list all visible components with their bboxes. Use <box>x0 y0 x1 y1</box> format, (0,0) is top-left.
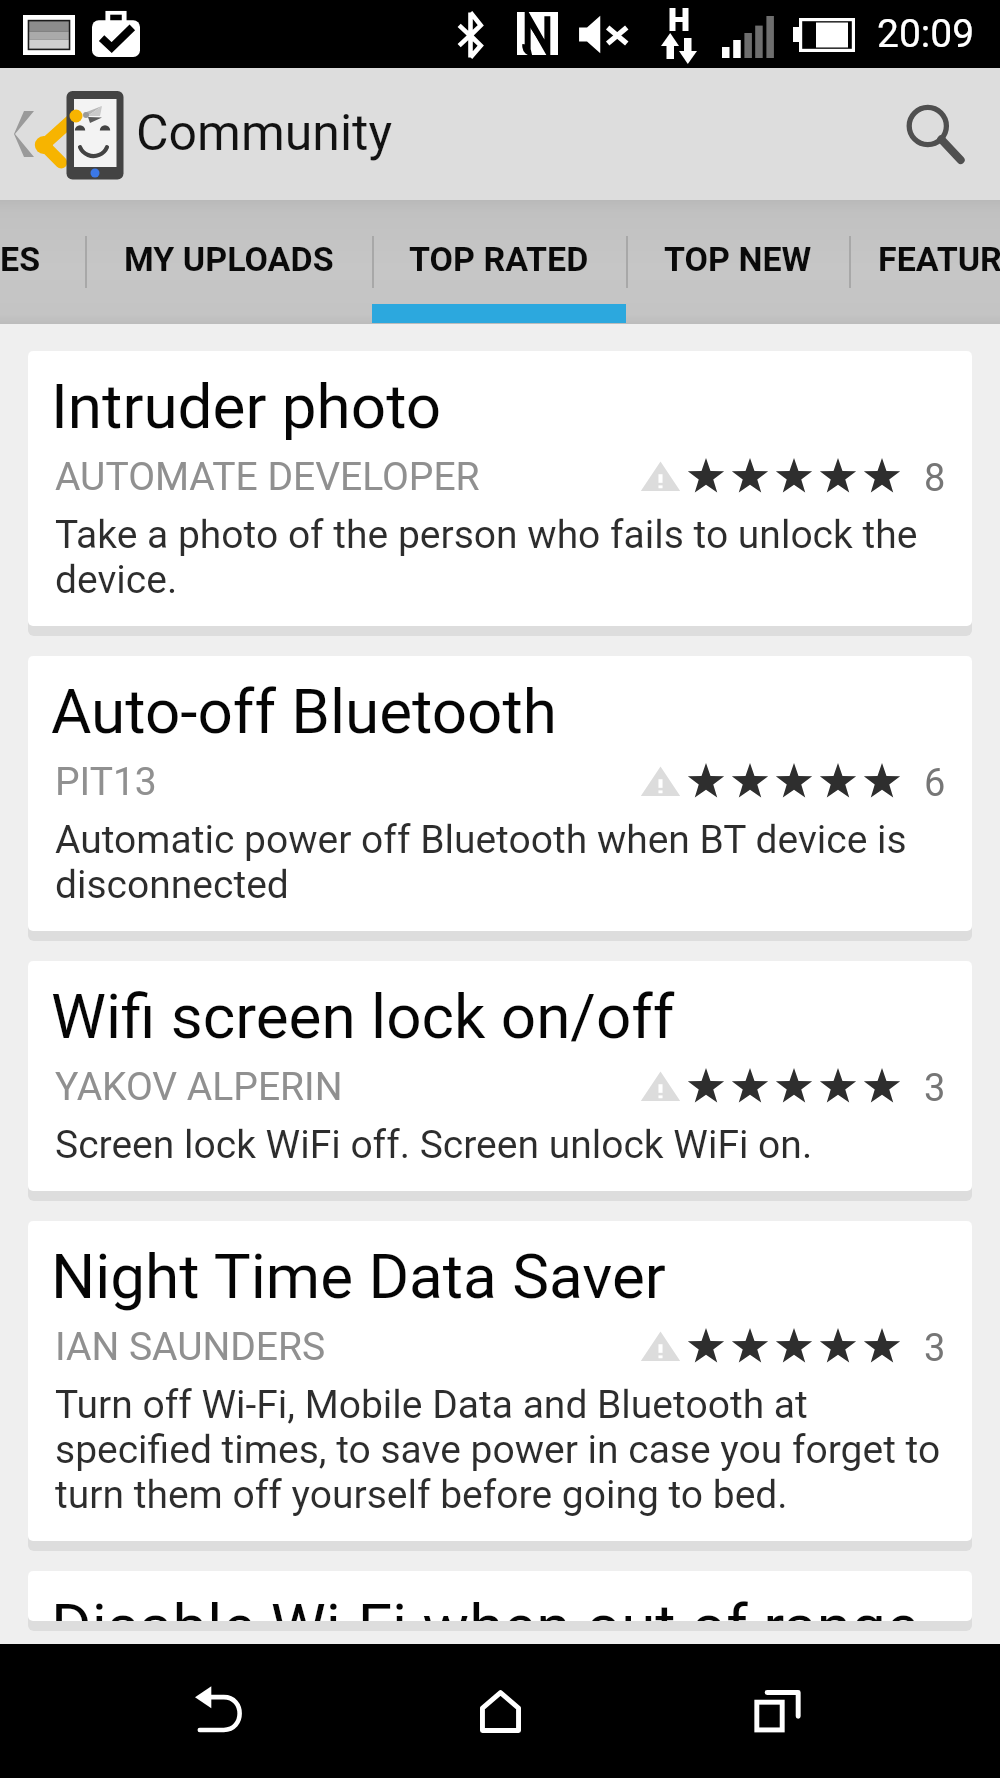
staticText: IAN SAUNDERS <box>55 1324 326 1370</box>
staticText: 20:09 <box>877 11 975 57</box>
button[interactable]: Navigate up <box>0 68 130 200</box>
staticText: turn them off yourself before going to b… <box>55 1472 788 1518</box>
staticText: Disable Wi-Fi when out of range <box>51 1590 919 1621</box>
staticText: Take a photo of the person who fails to … <box>55 512 918 558</box>
button[interactable]: TOP RATED <box>372 200 626 324</box>
staticText: MY UPLOADS <box>124 239 334 279</box>
button[interactable]: MOVIES <box>0 200 85 324</box>
staticText: Wifi screen lock on/off <box>51 980 675 1053</box>
staticText: specified times, to save power in case y… <box>55 1427 941 1473</box>
button[interactable]: Recent apps <box>694 1644 860 1778</box>
staticText: 8 <box>924 456 946 501</box>
button[interactable]: Disable Wi-Fi when out of range <box>28 1571 972 1621</box>
button[interactable]: MY UPLOADS <box>85 200 372 324</box>
staticText: TOP NEW <box>664 239 812 279</box>
button[interactable]: Wifi screen lock on/off <box>28 961 972 1191</box>
button[interactable]: Night Time Data Saver <box>28 1221 972 1541</box>
button[interactable]: Intruder photo <box>28 351 972 626</box>
staticText: MOVIES <box>0 239 41 279</box>
staticText: 3 <box>924 1326 946 1371</box>
staticText: Turn off Wi-Fi, Mobile Data and Bluetoot… <box>55 1382 808 1428</box>
button[interactable]: Home <box>417 1644 583 1778</box>
staticText: Community <box>136 104 393 163</box>
button[interactable]: Auto-off Bluetooth <box>28 656 972 931</box>
staticText: Screen lock WiFi off. Screen unlock WiFi… <box>55 1122 813 1168</box>
staticText: PIT13 <box>55 759 157 805</box>
staticText: 3 <box>924 1066 946 1111</box>
staticText: Auto-off Bluetooth <box>51 675 557 748</box>
staticText: device. <box>55 557 178 603</box>
button[interactable]: Search <box>868 68 1000 200</box>
button[interactable]: Back <box>140 1644 306 1778</box>
button[interactable]: TOP NEW <box>626 200 849 324</box>
staticText: FEATURED <box>878 239 1000 279</box>
button[interactable]: FEATURED <box>849 200 1000 324</box>
staticText: YAKOV ALPERIN <box>55 1064 343 1110</box>
staticText: Intruder photo <box>51 370 442 443</box>
staticText: AUTOMATE DEVELOPER <box>55 454 480 500</box>
staticText: TOP RATED <box>409 239 589 279</box>
staticText: 6 <box>924 761 946 806</box>
staticText: Automatic power off Bluetooth when BT de… <box>55 817 907 863</box>
staticText: Night Time Data Saver <box>51 1240 666 1313</box>
staticText: disconnected <box>55 862 289 908</box>
